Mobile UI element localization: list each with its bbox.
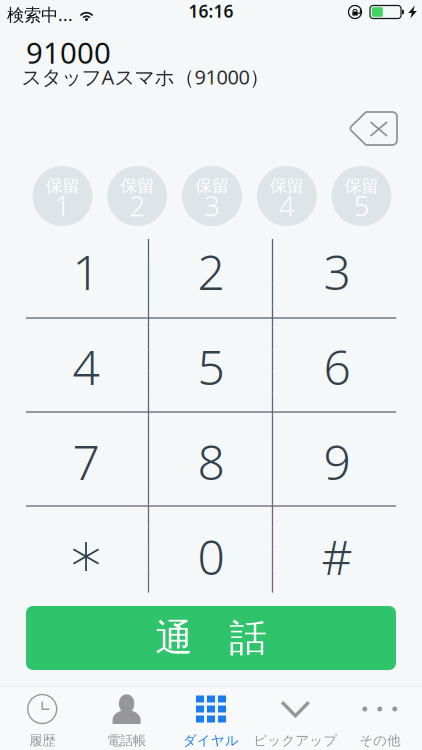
button[interactable]: 保留 xyxy=(331,166,391,226)
staticText: その他 xyxy=(359,732,400,749)
staticText: 通 話 xyxy=(155,615,266,661)
button[interactable]: 4 xyxy=(27,322,145,410)
button[interactable]: 保留 xyxy=(257,166,317,226)
staticText: 保留 xyxy=(344,175,378,197)
staticText: 9 xyxy=(323,430,350,493)
button[interactable]: 保留 xyxy=(107,166,167,226)
staticText: 保留 xyxy=(120,175,154,197)
staticText: 2 xyxy=(129,187,145,224)
staticText: 91000 xyxy=(26,33,111,72)
staticText: 5 xyxy=(197,335,224,398)
button[interactable]: 8 xyxy=(152,417,270,505)
staticText: 保留 xyxy=(45,175,79,197)
staticText: 7 xyxy=(72,430,99,493)
staticText: 3 xyxy=(323,240,350,303)
staticText: 0 xyxy=(197,525,224,588)
staticText: スタッフAスマホ（91000） xyxy=(21,63,269,90)
button[interactable]: 7 xyxy=(27,417,145,505)
button[interactable]: 0 xyxy=(152,512,270,600)
button[interactable]: 1 xyxy=(27,227,145,315)
button[interactable]: 3 xyxy=(278,227,396,315)
staticText: 検索中... xyxy=(7,3,73,26)
staticText: 5 xyxy=(353,187,369,224)
button[interactable]: 9 xyxy=(278,417,396,505)
staticText: 保留 xyxy=(270,175,304,197)
staticText: 1 xyxy=(54,187,70,224)
staticText: 履歴 xyxy=(29,732,55,749)
button[interactable]: star xyxy=(27,512,145,600)
staticText: ダイヤル xyxy=(183,732,239,749)
staticText: 4 xyxy=(279,187,295,224)
staticText: 3 xyxy=(204,187,220,224)
staticText: 6 xyxy=(323,335,350,398)
staticText: 電話帳 xyxy=(107,732,146,749)
button[interactable]: 通 話 xyxy=(26,606,396,670)
button[interactable]: 保留 xyxy=(182,166,242,226)
button[interactable]: 6 xyxy=(278,322,396,410)
button[interactable]: Delete xyxy=(342,104,405,153)
button[interactable]: 保留 xyxy=(32,166,92,226)
staticText: 8 xyxy=(197,430,224,493)
staticText: ピックアップ xyxy=(253,732,337,749)
button[interactable]: 2 xyxy=(152,227,270,315)
staticText: 2 xyxy=(197,240,224,303)
button[interactable]: 電話帳 xyxy=(84,686,169,750)
staticText: # xyxy=(321,525,352,588)
staticText: 16:16 xyxy=(188,0,233,22)
button[interactable]: # xyxy=(278,512,396,600)
button[interactable]: その他 xyxy=(338,686,422,750)
button[interactable]: 5 xyxy=(152,322,270,410)
staticText: 1 xyxy=(72,240,99,303)
button[interactable]: ピックアップ xyxy=(253,686,338,750)
staticText: 4 xyxy=(72,335,99,398)
button[interactable]: 履歴 xyxy=(0,686,84,750)
staticText: 保留 xyxy=(195,175,229,197)
button[interactable]: ダイヤル xyxy=(169,686,253,750)
